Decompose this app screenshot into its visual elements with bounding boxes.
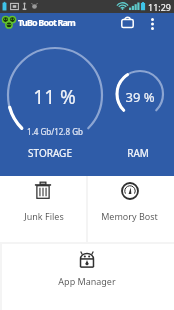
button[interactable]: More options <box>141 13 163 35</box>
staticText: STORAGE <box>28 146 72 160</box>
button[interactable] <box>88 176 174 242</box>
staticText: Memory Bost <box>101 210 158 222</box>
staticText: 39 % <box>125 88 155 106</box>
staticText: 11:29 <box>148 1 172 13</box>
staticText: 1.4 Gb/12.8 Gb <box>27 126 83 137</box>
staticText: App Manager <box>58 275 116 287</box>
button[interactable]: Store <box>116 11 138 33</box>
button[interactable] <box>2 244 174 310</box>
staticText: RAM <box>127 146 149 160</box>
staticText: 11 % <box>33 84 76 110</box>
button[interactable] <box>0 176 86 242</box>
staticText: Junk Files <box>24 210 64 222</box>
staticText: TuBo Boot Ram <box>18 16 76 28</box>
